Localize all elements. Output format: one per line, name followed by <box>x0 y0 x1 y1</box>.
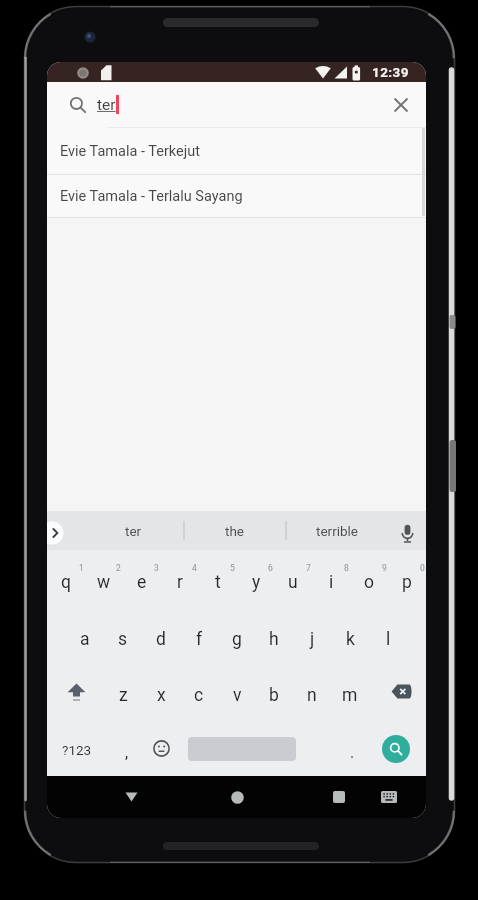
button[interactable]: h <box>255 607 293 664</box>
staticText: d <box>156 629 166 650</box>
staticText: h <box>269 629 279 650</box>
button[interactable]: s <box>104 607 142 664</box>
staticText: , <box>125 743 129 762</box>
staticText: 8 <box>344 563 349 573</box>
button[interactable] <box>319 776 359 818</box>
button[interactable]: o <box>350 550 388 607</box>
button[interactable] <box>111 776 151 818</box>
button[interactable]: the <box>184 511 286 550</box>
staticText: terrible <box>316 523 359 539</box>
button[interactable] <box>379 82 423 127</box>
staticText: b <box>269 685 279 706</box>
button[interactable]: y <box>237 550 275 607</box>
button[interactable] <box>217 776 257 818</box>
staticText: 2 <box>116 563 121 573</box>
button[interactable]: Evie Tamala - Terkejut <box>47 128 426 174</box>
staticText: Evie Tamala - Terlalu Sayang <box>60 188 243 205</box>
button[interactable] <box>47 511 64 550</box>
staticText: 1 <box>79 563 84 573</box>
staticText: e <box>137 572 147 593</box>
button[interactable] <box>141 720 181 777</box>
button[interactable]: a <box>66 607 104 664</box>
staticText: ?123 <box>62 742 92 758</box>
staticText: c <box>194 685 204 706</box>
staticText: a <box>80 629 90 650</box>
staticText: the <box>225 523 245 539</box>
button[interactable]: f <box>180 607 218 664</box>
staticText: 5 <box>230 563 235 573</box>
staticText: i <box>329 572 334 593</box>
button[interactable]: j <box>293 607 331 664</box>
button[interactable]: b <box>255 663 293 720</box>
staticText: s <box>118 629 128 650</box>
button[interactable]: g <box>218 607 256 664</box>
staticText: w <box>97 572 111 593</box>
staticText: u <box>288 572 298 593</box>
staticText: f <box>196 629 203 650</box>
button[interactable]: v <box>218 663 256 720</box>
staticText: g <box>232 629 242 650</box>
staticText: ter <box>97 96 116 114</box>
button[interactable]: p <box>388 550 426 607</box>
staticText: o <box>364 572 374 593</box>
staticText: m <box>342 685 358 706</box>
button[interactable]: m <box>331 663 369 720</box>
button[interactable]: i <box>312 550 350 607</box>
button[interactable]: w <box>85 550 123 607</box>
button[interactable]: r <box>161 550 199 607</box>
staticText: ter <box>125 523 142 539</box>
staticText: 3 <box>154 563 159 573</box>
button[interactable]: k <box>331 607 369 664</box>
staticText: 7 <box>306 563 311 573</box>
staticText: n <box>307 685 317 706</box>
button[interactable]: . <box>333 720 371 777</box>
staticText: k <box>346 629 355 650</box>
button[interactable]: terrible <box>286 511 388 550</box>
button[interactable]: l <box>369 607 407 664</box>
button[interactable]: d <box>142 607 180 664</box>
staticText: l <box>386 629 391 650</box>
button[interactable]: x <box>142 663 180 720</box>
button[interactable]: q <box>47 550 85 607</box>
button[interactable]: ter <box>47 82 426 127</box>
staticText: z <box>119 685 128 706</box>
staticText: Evie Tamala - Terkejut <box>60 143 200 160</box>
button[interactable]: u <box>274 550 312 607</box>
staticText: y <box>252 572 261 593</box>
button[interactable]: c <box>180 663 218 720</box>
staticText: 4 <box>192 563 197 573</box>
staticText: . <box>350 743 355 762</box>
button[interactable] <box>373 663 426 720</box>
staticText: 6 <box>268 563 273 573</box>
button[interactable]: e <box>123 550 161 607</box>
staticText: 0 <box>420 563 425 573</box>
button[interactable]: z <box>104 663 142 720</box>
button[interactable]: ?123 <box>53 720 101 777</box>
button[interactable]: , <box>108 720 146 777</box>
button[interactable] <box>371 776 407 818</box>
staticText: r <box>177 572 183 593</box>
staticText: q <box>61 572 71 593</box>
staticText: 12:39 <box>372 64 409 80</box>
staticText: v <box>233 685 242 706</box>
button[interactable]: t <box>199 550 237 607</box>
button[interactable]: n <box>293 663 331 720</box>
button[interactable] <box>382 735 410 763</box>
staticText: t <box>215 572 221 593</box>
button[interactable] <box>388 511 426 550</box>
button[interactable] <box>48 663 105 720</box>
staticText: 9 <box>382 563 387 573</box>
button[interactable]: Evie Tamala - Terlalu Sayang <box>47 175 426 217</box>
staticText: x <box>157 685 166 706</box>
button[interactable]: ter <box>82 511 184 550</box>
staticText: p <box>402 572 412 593</box>
staticText: j <box>310 629 315 650</box>
